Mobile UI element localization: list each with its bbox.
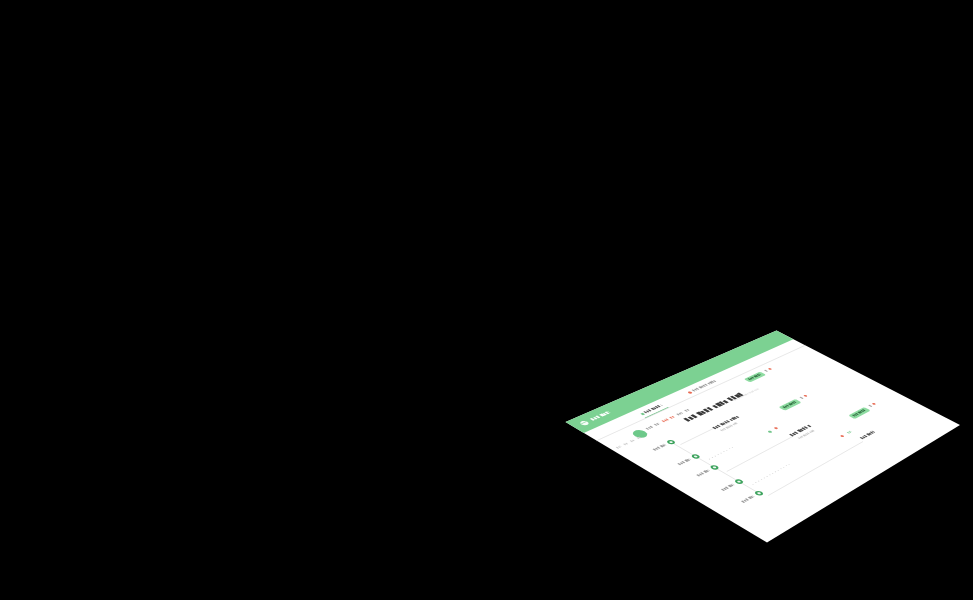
button[interactable]: Pipeline build timeline screen	[0, 0, 973, 600]
